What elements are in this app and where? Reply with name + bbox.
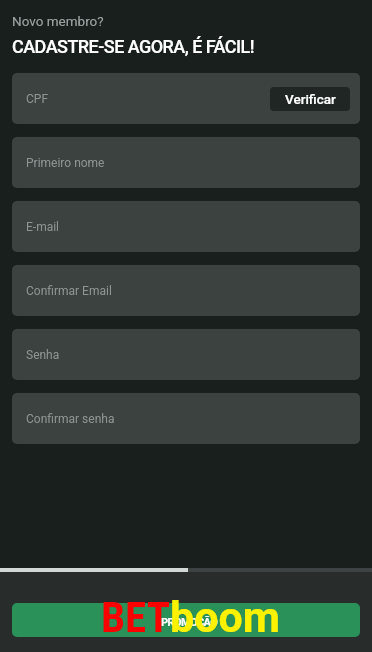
- button[interactable]: Verificar: [270, 87, 350, 111]
- button[interactable]: CPF: [12, 73, 360, 124]
- button[interactable]: Confirmar Email: [12, 265, 360, 316]
- staticText: boom: [170, 592, 280, 642]
- staticText: Primeiro nome: [26, 156, 105, 170]
- staticText: Novo membro?: [12, 13, 104, 29]
- staticText: CADASTRE-SE AGORA, É FÁCIL!: [12, 36, 254, 57]
- staticText: Verificar: [285, 91, 336, 107]
- button[interactable]: E-mail: [12, 201, 360, 252]
- staticText: E-mail: [26, 220, 60, 234]
- staticText: Confirmar Email: [26, 284, 112, 298]
- staticText: CPF: [26, 92, 49, 106]
- button[interactable]: Senha: [12, 329, 360, 380]
- button[interactable]: Primeiro nome: [12, 137, 360, 188]
- button[interactable]: PROMOÇÃO: [12, 603, 360, 637]
- other: BETboom logo: [101, 592, 280, 642]
- staticText: BET: [101, 592, 170, 642]
- button[interactable]: Confirmar senha: [12, 393, 360, 444]
- staticText: Senha: [26, 348, 60, 362]
- staticText: PROMOÇÃO: [161, 616, 218, 629]
- staticText: Confirmar senha: [26, 412, 115, 426]
